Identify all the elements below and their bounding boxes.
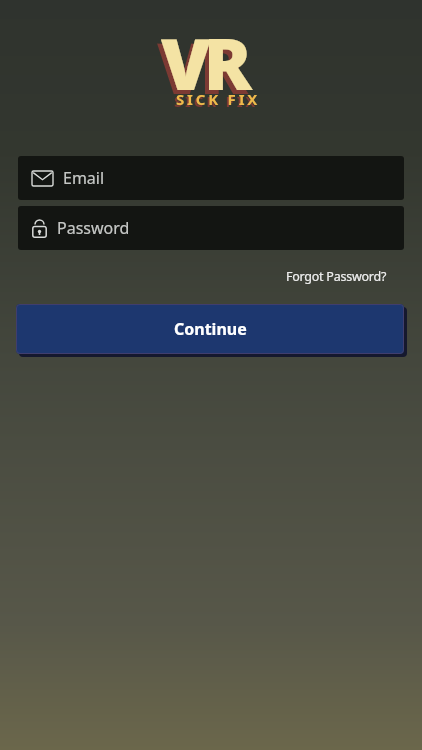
button[interactable]: Continue [16, 304, 404, 354]
staticText: VR [157, 18, 242, 115]
staticText: Forgot Password? [286, 268, 387, 285]
staticText: Password [57, 217, 130, 239]
staticText: SICK FIX [174, 91, 259, 111]
staticText: Email [63, 167, 105, 189]
button[interactable]: Forgot Password? [286, 268, 387, 285]
staticText: VR [161, 14, 246, 111]
button[interactable]: Password [18, 206, 404, 250]
staticText: Continue [174, 318, 247, 340]
staticText: SICK FIX [176, 89, 261, 109]
button[interactable]: Email [18, 156, 404, 200]
